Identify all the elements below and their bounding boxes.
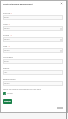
- button[interactable]: Yes: [3, 70, 63, 75]
- button[interactable]: Select: [3, 48, 63, 53]
- staticText: Create Standard Requirement: [3, 3, 33, 6]
- staticText: Select: [4, 27, 10, 30]
- staticText: Select: [4, 38, 10, 41]
- staticText: Submit: [4, 100, 11, 103]
- staticText: *: [10, 34, 12, 37]
- staticText: Select: [4, 82, 10, 85]
- staticText: Is Parent?: [3, 56, 13, 59]
- staticText: Active: [7, 92, 13, 95]
- staticText: Select the parent requirement for this i…: [3, 88, 41, 91]
- staticText: Select: [4, 49, 10, 52]
- staticText: Yes: [4, 71, 8, 74]
- button[interactable]: Select: [3, 37, 63, 42]
- button[interactable]: Close: [60, 2, 63, 5]
- staticText: Scope: [3, 34, 10, 37]
- button[interactable]: Enter: [3, 59, 63, 64]
- button[interactable]: Enter: [3, 15, 63, 20]
- staticText: Source: [3, 12, 10, 15]
- button[interactable]: Submit: [3, 99, 12, 104]
- staticText: Enter: [4, 60, 10, 63]
- staticText: *: [10, 12, 12, 15]
- button[interactable]: Select: [3, 26, 63, 31]
- button[interactable]: Active: [3, 92, 13, 95]
- staticText: Title: [3, 45, 8, 48]
- staticText: *: [8, 45, 10, 48]
- staticText: Type: [3, 23, 8, 26]
- staticText: Enter: [4, 16, 10, 19]
- staticText: *: [8, 23, 10, 26]
- staticText: Status: [3, 67, 10, 70]
- staticText: Relationship: [3, 78, 16, 81]
- button[interactable]: Select: [3, 81, 63, 86]
